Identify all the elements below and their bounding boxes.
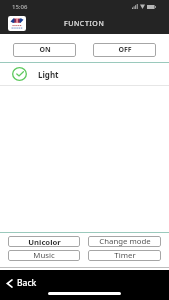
staticText: Music [33, 250, 55, 261]
staticText: Change mode [99, 236, 151, 247]
button[interactable]: OFF [93, 43, 156, 57]
button[interactable]: ON [13, 43, 76, 57]
staticText: Timer [114, 250, 136, 261]
staticText: 15:06 [12, 3, 28, 11]
button[interactable]: Timer [88, 250, 161, 261]
button[interactable]: Change mode [88, 236, 161, 247]
button[interactable]: Brand logo [8, 16, 26, 31]
staticText: FUNCTION [64, 19, 105, 29]
staticText: Light [38, 69, 59, 80]
staticText: Back [17, 277, 37, 289]
staticText: ON [39, 45, 51, 55]
staticText: OFF [118, 45, 132, 55]
button[interactable]: Unicolor [8, 236, 80, 247]
button[interactable]: Music [8, 250, 80, 261]
button[interactable]: Back [5, 277, 37, 289]
staticText: Unicolor [28, 237, 61, 247]
button[interactable]: Light [0, 63, 169, 85]
